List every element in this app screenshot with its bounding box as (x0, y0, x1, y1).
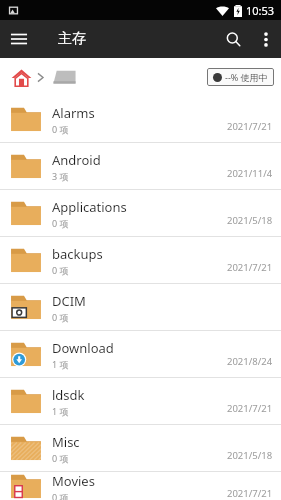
button[interactable]: Open navigation menu (0, 20, 38, 58)
button[interactable]: backups (0, 237, 281, 283)
staticText: 1 项 (52, 405, 69, 417)
staticText: DCIM (52, 292, 86, 310)
staticText: 0 项 (52, 264, 69, 276)
staticText: 0 项 (52, 311, 69, 323)
staticText: backups (52, 245, 103, 263)
staticText: Alarms (52, 104, 95, 122)
staticText: 0 项 (52, 217, 69, 229)
button[interactable]: ldsdk (0, 378, 281, 424)
button[interactable]: Alarms (0, 96, 281, 142)
staticText: Download (52, 339, 114, 357)
staticText: 0 项 (52, 491, 69, 500)
staticText: ldsdk (52, 386, 85, 404)
staticText: 2021/7/21 (227, 487, 273, 500)
button[interactable]: DCIM (0, 284, 281, 330)
staticText: 2021/5/18 (227, 214, 273, 227)
staticText: 1 项 (52, 358, 69, 370)
staticText: Android (52, 151, 101, 169)
button[interactable]: Android (0, 143, 281, 189)
button[interactable]: Misc (0, 425, 281, 471)
button[interactable]: Internal storage (51, 64, 77, 90)
staticText: 2021/5/18 (227, 449, 273, 462)
button[interactable]: Search (215, 21, 251, 57)
button[interactable]: More options (251, 24, 281, 54)
staticText: 0 项 (52, 123, 69, 135)
staticText: Misc (52, 433, 80, 451)
staticText: --% 使用中 (225, 71, 268, 83)
staticText: 0 项 (52, 452, 69, 464)
button[interactable]: Home (8, 64, 34, 90)
staticText: 主存 (58, 30, 86, 48)
staticText: 2021/7/21 (227, 120, 273, 133)
staticText: Applications (52, 198, 127, 216)
staticText: Movies (52, 472, 95, 490)
button[interactable]: Movies (0, 472, 281, 500)
button[interactable]: --% 使用中 (207, 68, 274, 86)
staticText: 2021/11/4 (227, 167, 273, 180)
staticText: 2021/7/21 (227, 261, 273, 274)
button[interactable]: Applications (0, 190, 281, 236)
button[interactable]: Download (0, 331, 281, 377)
staticText: 3 项 (52, 170, 69, 182)
staticText: 2021/7/21 (227, 402, 273, 415)
staticText: 10:53 (246, 3, 275, 18)
staticText: 2021/8/24 (227, 355, 273, 368)
